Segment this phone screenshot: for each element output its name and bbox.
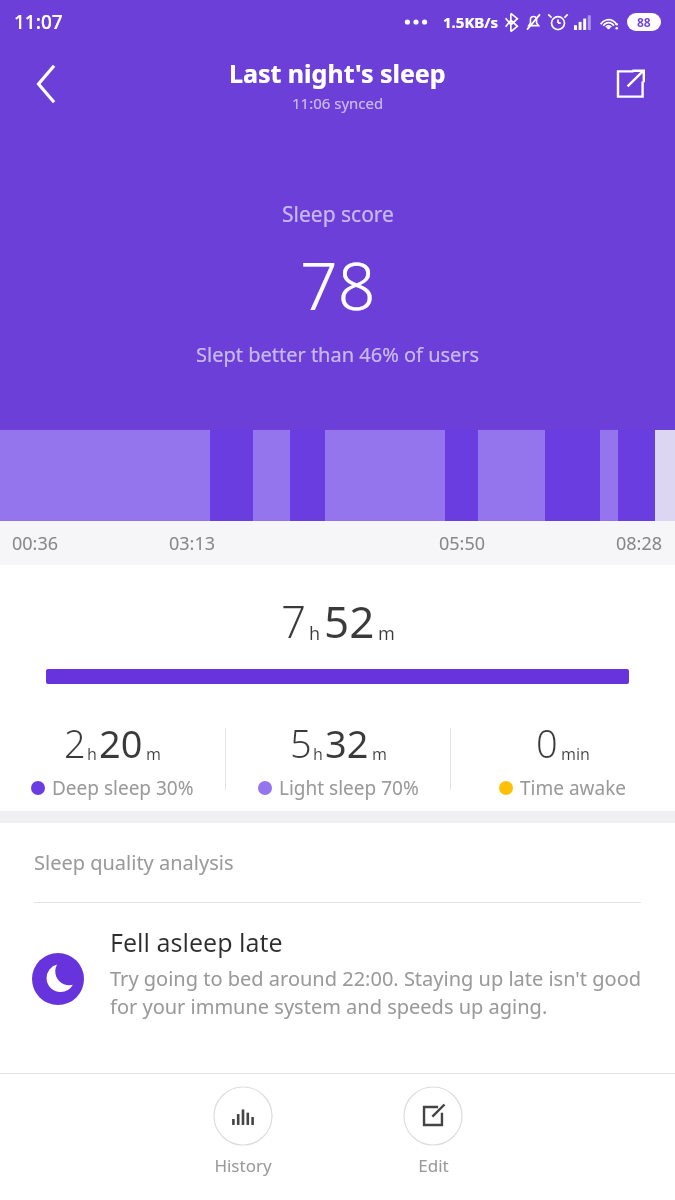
- staticText: Sleep quality analysis: [34, 849, 234, 876]
- staticText: min: [561, 743, 590, 765]
- staticText: 11:07: [14, 9, 63, 35]
- button[interactable]: Fell asleep late: [0, 925, 675, 1020]
- button[interactable]: 2: [0, 711, 225, 807]
- staticText: Fell asleep late: [110, 925, 283, 959]
- staticText: Edit: [418, 1154, 449, 1177]
- staticText: Sleep score: [282, 200, 394, 229]
- staticText: 20: [99, 717, 143, 769]
- staticText: History: [214, 1154, 272, 1177]
- staticText: 1.5KB/s: [443, 12, 499, 32]
- staticText: Try going to bed around 22:00. Staying u…: [110, 965, 659, 1020]
- staticText: Light sleep 70%: [279, 775, 419, 801]
- button[interactable]: Back: [18, 56, 74, 112]
- button[interactable]: Edit: [378, 1074, 488, 1177]
- staticText: m: [372, 743, 387, 765]
- staticText: 32: [325, 717, 369, 769]
- staticText: Slept better than 46% of users: [196, 341, 480, 368]
- staticText: 7: [281, 591, 307, 651]
- button[interactable]: 5: [226, 711, 450, 807]
- staticText: 88: [637, 14, 651, 30]
- button[interactable]: History: [188, 1074, 298, 1177]
- staticText: 78: [300, 239, 376, 329]
- staticText: 05:50: [439, 531, 486, 556]
- staticText: m: [378, 621, 395, 646]
- staticText: 03:13: [169, 531, 216, 556]
- staticText: h: [309, 621, 321, 646]
- staticText: 5: [290, 717, 312, 769]
- staticText: 52: [324, 591, 375, 651]
- button[interactable]: Share: [603, 57, 657, 111]
- button[interactable]: 0: [451, 711, 675, 807]
- staticText: 00:36: [12, 531, 59, 556]
- staticText: m: [146, 743, 161, 765]
- staticText: Last night's sleep: [229, 56, 446, 90]
- staticText: h: [313, 743, 323, 765]
- staticText: h: [87, 743, 97, 765]
- staticText: 0: [536, 717, 558, 769]
- staticText: 11:06 synced: [292, 93, 384, 113]
- staticText: Time awake: [520, 775, 627, 801]
- staticText: 08:28: [616, 531, 663, 556]
- staticText: 2: [64, 717, 86, 769]
- staticText: Deep sleep 30%: [52, 775, 194, 801]
